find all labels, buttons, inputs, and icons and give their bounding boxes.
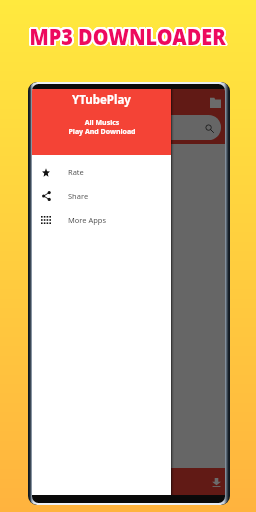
button[interactable]: Share	[32, 184, 171, 208]
button[interactable]: Download	[207, 473, 225, 491]
staticText: YTubePlay	[72, 92, 131, 108]
button[interactable]: Rate	[32, 160, 171, 184]
staticText: Share	[68, 191, 89, 201]
staticText: Rate	[68, 167, 84, 177]
button[interactable]: More Apps	[32, 208, 171, 232]
staticText: All Musics Play And Download	[68, 118, 136, 136]
button[interactable]: Folder	[205, 92, 225, 112]
staticText: More Apps	[68, 215, 107, 225]
button[interactable]	[32, 115, 221, 140]
